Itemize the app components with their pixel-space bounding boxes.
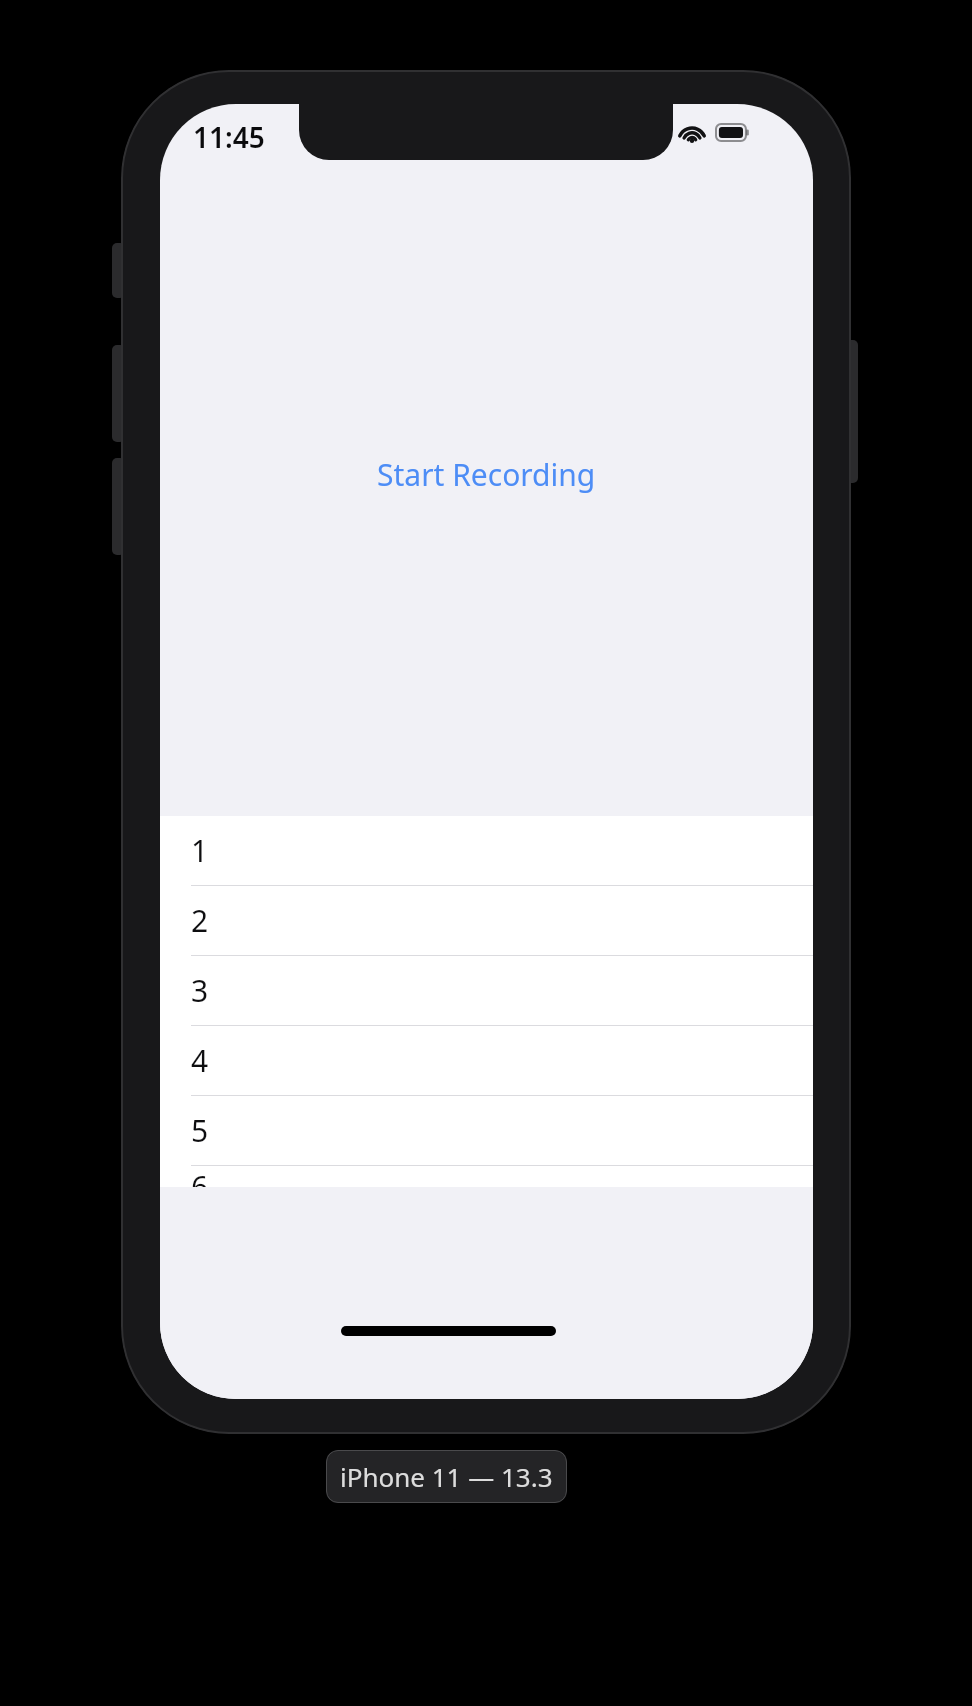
button[interactable]: 3: [160, 956, 813, 1026]
staticText: 1: [191, 830, 209, 871]
button[interactable]: 4: [160, 1026, 813, 1096]
staticText: 6: [191, 1166, 209, 1187]
staticText: 3: [191, 970, 209, 1011]
staticText: 2: [191, 900, 209, 941]
button[interactable]: 5: [160, 1096, 813, 1166]
staticText: iPhone 11 — 13.3: [340, 1459, 553, 1494]
button[interactable]: 1: [160, 816, 813, 886]
button[interactable]: 2: [160, 886, 813, 956]
staticText: Start Recording: [377, 454, 596, 495]
button[interactable]: Start Recording: [160, 434, 813, 514]
button[interactable]: 6: [160, 1166, 813, 1187]
staticText: 11:45: [193, 118, 265, 156]
staticText: 5: [191, 1110, 209, 1151]
staticText: 4: [191, 1040, 209, 1081]
button[interactable]: iPhone 11 — 13.3: [326, 1450, 567, 1503]
